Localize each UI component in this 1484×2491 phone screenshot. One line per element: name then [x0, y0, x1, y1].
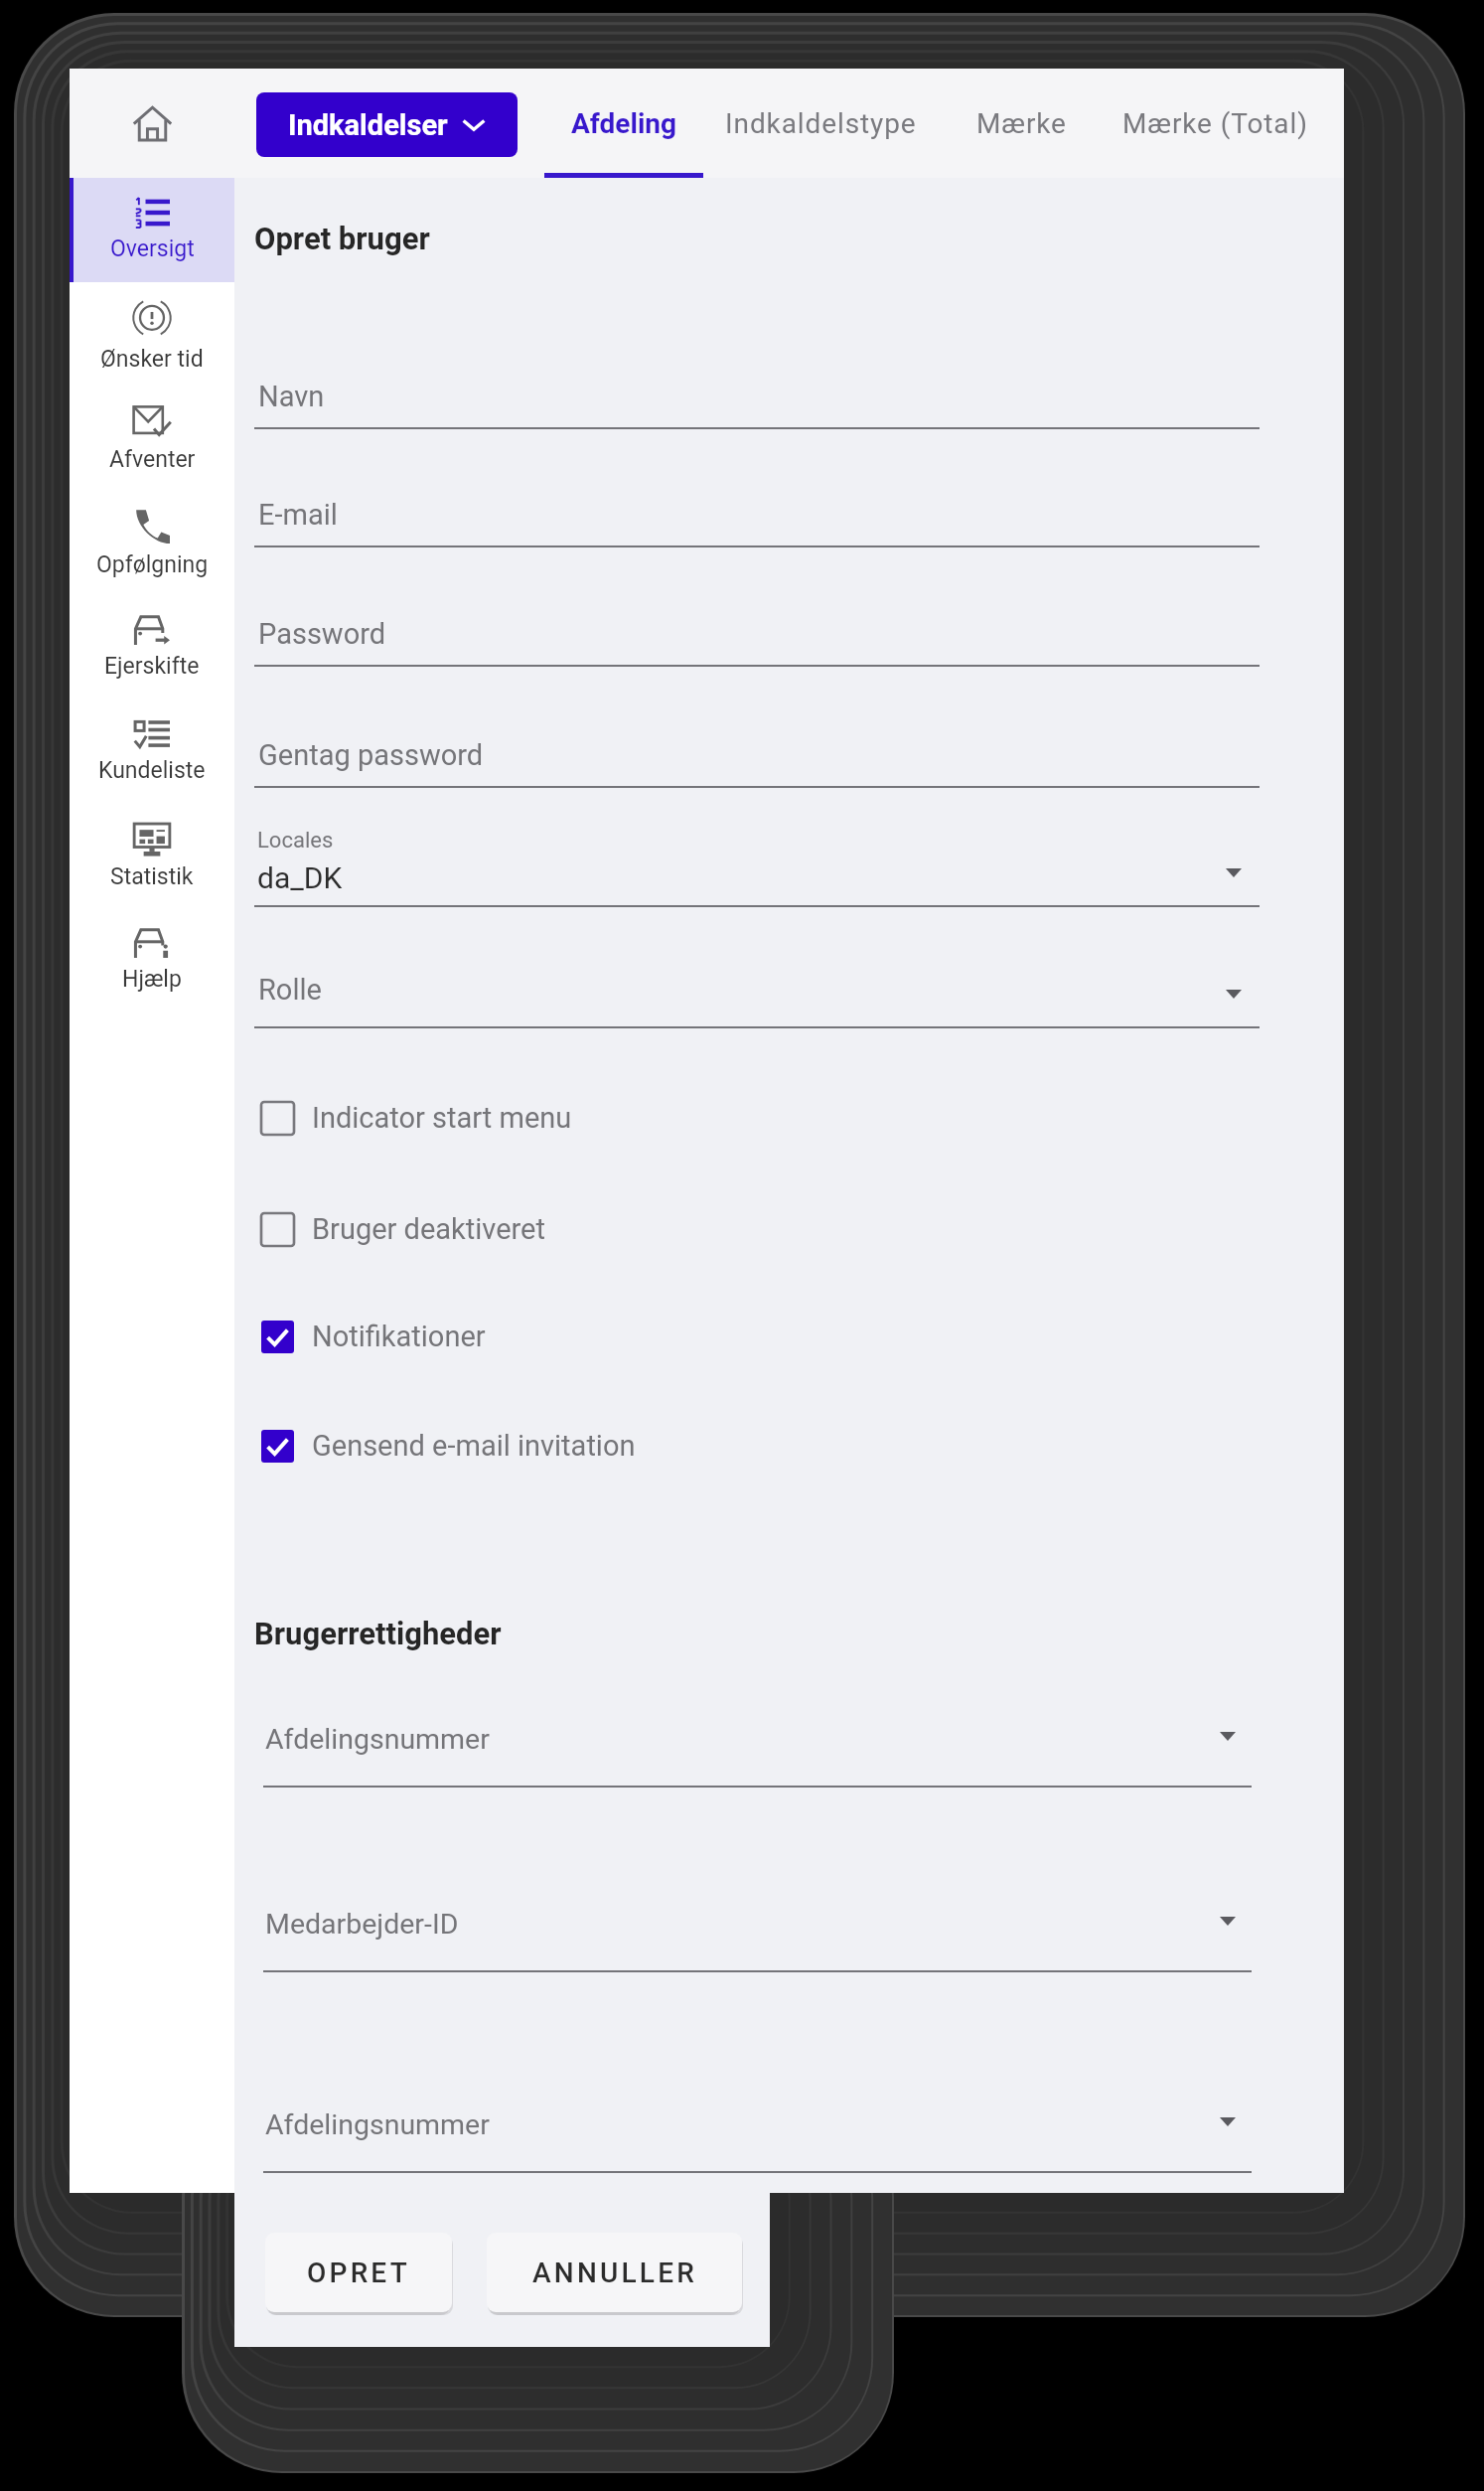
staticText: Rolle [258, 973, 322, 1007]
staticText: Indkaldelstype [725, 107, 917, 140]
staticText: OPRET [307, 2257, 410, 2289]
staticText: Afventer [109, 446, 196, 473]
button[interactable]: Kundeliste [70, 700, 234, 804]
staticText: Notifikationer [312, 1320, 486, 1353]
button[interactable]: Afdelingsnummer [263, 1724, 1252, 1786]
button[interactable]: Hjælp [70, 908, 234, 1012]
staticText: Hjælp [122, 966, 182, 993]
button[interactable]: Opfølgning [70, 491, 234, 595]
staticText: Opret bruger [254, 221, 430, 256]
staticText: Opfølgning [96, 551, 209, 578]
button[interactable]: Medarbejder-ID [263, 1909, 1252, 1970]
button[interactable]: Password [254, 609, 1260, 667]
button[interactable]: Indicator start menu [261, 1082, 957, 1154]
button[interactable]: Home [70, 69, 234, 178]
button[interactable]: ANNULLER [487, 2233, 742, 2312]
staticText: Brugerrettigheder [254, 1616, 502, 1651]
staticText: Password [258, 617, 386, 651]
button[interactable]: Afventer [70, 387, 234, 491]
button[interactable]: Gensend e-mail invitation [261, 1410, 957, 1481]
staticText: Afdelingsnummer [265, 2108, 490, 2141]
button[interactable]: Statistik [70, 804, 234, 908]
button[interactable]: Notifikationer [261, 1301, 957, 1372]
staticText: Afdelingsnummer [265, 1723, 490, 1756]
staticText: ANNULLER [532, 2257, 697, 2289]
staticText: Medarbejder-ID [265, 1908, 459, 1941]
button[interactable]: Afdeling [544, 69, 703, 178]
button[interactable]: Indkaldelstype [713, 69, 928, 178]
staticText: Kundeliste [98, 757, 206, 784]
button[interactable]: Rolle [254, 965, 1260, 1026]
staticText: Indicator start menu [312, 1101, 572, 1135]
staticText: Navn [258, 380, 325, 413]
staticText: Gentag password [258, 738, 484, 772]
staticText: Oversigt [110, 235, 195, 262]
button[interactable]: Navn [254, 372, 1260, 429]
button[interactable]: Gentag password [254, 730, 1260, 788]
staticText: da_DK [257, 860, 343, 895]
staticText: Mærke (Total) [1122, 107, 1308, 140]
button[interactable]: Ønsker tid [70, 282, 234, 387]
button[interactable]: Mærke (Total) [1101, 69, 1329, 178]
button[interactable]: E-mail [254, 490, 1260, 547]
staticText: Ejerskifte [104, 653, 200, 680]
button[interactable]: Mærke [956, 69, 1087, 178]
staticText: Afdeling [571, 107, 677, 140]
staticText: Bruger deaktiveret [312, 1212, 545, 1246]
button[interactable]: Locales [254, 808, 1260, 907]
staticText: Locales [257, 828, 334, 854]
button[interactable]: Oversigt [70, 178, 234, 282]
button[interactable]: Indkaldelser [256, 92, 518, 157]
staticText: Ønsker tid [100, 346, 204, 373]
button[interactable]: Afdelingsnummer [263, 2109, 1252, 2171]
button[interactable]: OPRET [265, 2233, 452, 2312]
staticText: Gensend e-mail invitation [312, 1429, 636, 1463]
staticText: E-mail [258, 498, 338, 532]
staticText: Statistik [110, 863, 194, 890]
button[interactable]: Ejerskifte [70, 595, 234, 700]
button[interactable]: Bruger deaktiveret [261, 1193, 957, 1265]
staticText: Indkaldelser [288, 108, 448, 142]
staticText: Mærke [976, 107, 1067, 140]
